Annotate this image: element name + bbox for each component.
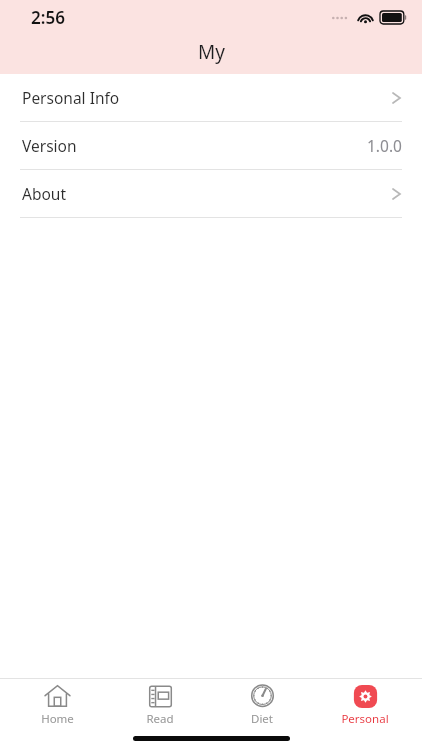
staticText: Personal — [341, 711, 389, 727]
staticText: Diet — [251, 711, 273, 727]
staticText: 1.0.0 — [367, 135, 402, 156]
button[interactable]: Diet — [217, 683, 307, 727]
staticText: Personal Info — [22, 87, 120, 108]
staticText: Version — [22, 135, 77, 156]
staticText: About — [22, 183, 66, 204]
staticText: 2:56 — [31, 6, 65, 29]
button[interactable]: Personal — [320, 683, 410, 727]
staticText: Read — [146, 711, 174, 727]
button[interactable]: About — [0, 170, 422, 217]
button[interactable]: Personal Info — [0, 74, 422, 121]
staticText: Home — [41, 711, 74, 727]
staticText: My — [198, 39, 225, 65]
button[interactable]: Home — [12, 683, 102, 727]
button[interactable]: Version — [0, 122, 422, 169]
button[interactable]: Read — [115, 683, 205, 727]
